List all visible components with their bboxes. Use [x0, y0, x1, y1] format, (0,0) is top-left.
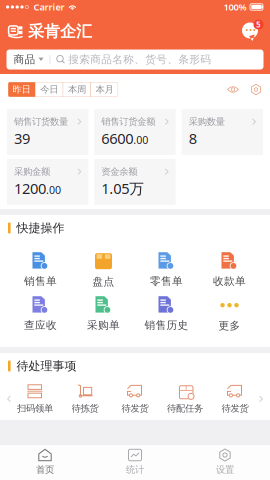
staticText: 盘点	[92, 275, 114, 288]
staticText: 销售订货金额	[101, 116, 155, 127]
staticText: 销售订货数量	[14, 116, 68, 127]
staticText: 更多	[218, 319, 240, 332]
staticText: .00	[46, 183, 61, 197]
staticText: 扫码领单	[17, 403, 53, 414]
staticText: 待配任务	[167, 403, 203, 414]
staticText: 首页	[36, 464, 54, 475]
staticText: 商品	[13, 53, 35, 66]
staticText: 采购金额	[14, 166, 50, 177]
staticText: Carrier	[33, 1, 64, 13]
staticText: 设置	[216, 464, 234, 475]
staticText: 资金余额	[101, 166, 137, 177]
staticText: 昨日	[12, 84, 30, 95]
button[interactable]: Hide amounts	[227, 83, 239, 95]
staticText: 待发货	[121, 403, 148, 414]
staticText: 待拣货	[71, 403, 98, 414]
button[interactable]: 销售订货金额	[94, 109, 176, 155]
button[interactable]: 采购金额	[7, 159, 88, 205]
staticText: 今日	[40, 84, 58, 95]
button[interactable]: 本周	[63, 82, 90, 97]
staticText: 本月	[96, 84, 114, 95]
staticText: 5	[256, 19, 261, 30]
staticText: 待发货	[221, 403, 248, 414]
button[interactable]: 采购单	[72, 296, 135, 332]
staticText: 1200	[14, 178, 46, 198]
button[interactable]: 销售单	[9, 252, 72, 288]
button[interactable]: 盘点	[72, 252, 135, 288]
staticText: 销售历史	[144, 319, 188, 332]
staticText: 1.05万	[101, 178, 144, 198]
staticText: 39	[14, 128, 30, 148]
button[interactable]: 查应收	[9, 296, 72, 332]
button[interactable]: 资金余额	[94, 159, 176, 205]
staticText: 查应收	[24, 319, 57, 332]
staticText: 8	[189, 128, 197, 148]
button[interactable]: 本月	[91, 82, 118, 97]
button[interactable]: 待发货	[210, 384, 260, 414]
button[interactable]: 更多	[198, 296, 261, 332]
staticText: 采购数量	[189, 116, 225, 127]
staticText: 收款单	[213, 275, 246, 288]
staticText: 采肯企汇	[28, 22, 92, 41]
staticText: 采购单	[87, 319, 120, 332]
button[interactable]: 待配任务	[160, 384, 210, 414]
button[interactable]: 待拣货	[60, 384, 110, 414]
button[interactable]: 设置	[180, 443, 270, 480]
staticText: 快捷操作	[17, 221, 65, 235]
button[interactable]: 收款单	[198, 252, 261, 288]
staticText: 搜索商品名称、货号、条形码	[68, 53, 211, 66]
staticText: 零售单	[150, 275, 183, 288]
button[interactable]: 昨日	[8, 82, 35, 97]
staticText: 销售单	[24, 275, 57, 288]
button[interactable]: 待发货	[110, 384, 160, 414]
staticText: 6600	[101, 128, 133, 148]
button[interactable]: 首页	[0, 443, 90, 480]
button[interactable]: 今日	[36, 82, 63, 97]
staticText: 本周	[68, 84, 86, 95]
staticText: .00	[133, 133, 148, 147]
button[interactable]: 统计	[90, 443, 180, 480]
button[interactable]: 零售单	[135, 252, 198, 288]
button[interactable]: 商品	[6, 49, 263, 69]
button[interactable]: Display settings	[250, 83, 262, 95]
staticText: 统计	[126, 464, 144, 475]
button[interactable]: Messages	[239, 21, 262, 42]
button[interactable]: 销售历史	[135, 296, 198, 332]
button[interactable]: 扫码领单	[10, 384, 60, 414]
staticText: 待处理事项	[17, 359, 77, 373]
button[interactable]: 销售订货数量	[7, 109, 88, 155]
button[interactable]: 采购数量	[182, 109, 263, 155]
staticText: 100%	[223, 1, 246, 13]
